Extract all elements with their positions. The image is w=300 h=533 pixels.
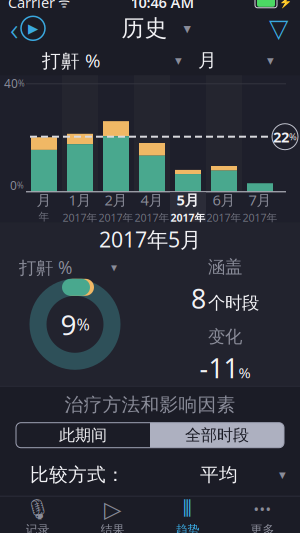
staticText: %	[76, 314, 89, 335]
staticText: 2017年	[134, 210, 169, 225]
staticText: %	[289, 130, 297, 143]
staticText: ▾	[279, 467, 286, 482]
staticText: 7月	[248, 190, 271, 209]
staticText: ▽	[269, 14, 288, 43]
staticText: 6月	[212, 190, 235, 209]
staticText: 8	[191, 281, 206, 316]
button[interactable]: ▷	[75, 496, 150, 533]
staticText: 月	[198, 49, 217, 72]
button[interactable]: 历史	[113, 11, 198, 45]
staticText: 0	[10, 177, 17, 193]
staticText: %	[18, 78, 25, 89]
button[interactable]: 全部时段	[150, 423, 284, 448]
staticText: ▾	[175, 53, 182, 68]
button[interactable]: 此期间	[16, 423, 150, 448]
staticText: 变化	[208, 326, 242, 347]
staticText: 历史	[121, 14, 167, 42]
staticText: 9	[60, 306, 76, 343]
staticText: 🎙	[25, 498, 50, 521]
staticText: ⦀	[182, 498, 192, 520]
staticText: 记录	[25, 522, 49, 533]
staticText: 涵盖	[208, 256, 242, 278]
button[interactable]: •••	[225, 496, 300, 533]
button[interactable]: Back to playback	[0, 11, 55, 45]
staticText: 2月	[104, 190, 127, 209]
staticText: %	[17, 180, 24, 191]
button[interactable]: 🎙	[0, 496, 75, 533]
staticText: 趋势	[175, 522, 199, 533]
staticText: %	[238, 363, 250, 382]
staticText: 2017年	[62, 210, 97, 225]
staticText: ⚡	[279, 0, 292, 8]
staticText: 打鼾 %	[42, 48, 101, 73]
staticText: 4月	[140, 190, 163, 209]
staticText: 个时段	[208, 292, 259, 313]
staticText: 月	[36, 191, 51, 209]
button[interactable]: 月	[198, 46, 274, 74]
staticText: 2017年	[242, 210, 277, 225]
staticText: 2017年	[206, 210, 241, 225]
staticText: 年	[38, 210, 49, 223]
staticText: ▾	[183, 20, 190, 37]
staticText: ᯤ	[55, 0, 70, 11]
button[interactable]: ⦀	[150, 496, 225, 533]
staticText: 更多	[250, 522, 274, 533]
staticText: 此期间	[59, 425, 107, 445]
staticText: 40	[4, 75, 18, 91]
staticText: 2017年5月	[99, 225, 201, 253]
button[interactable]: 打鼾 %	[19, 256, 131, 278]
button[interactable]: Filter	[257, 11, 300, 45]
staticText: 治疗方法和影响因素	[64, 393, 235, 416]
staticText: •••	[253, 500, 271, 519]
staticText: 全部时段	[185, 425, 249, 445]
button[interactable]: 打鼾 %	[42, 46, 182, 74]
staticText: 打鼾 %	[19, 256, 72, 279]
staticText: ▾	[111, 260, 117, 274]
staticText: 5月	[176, 190, 199, 209]
staticText: 2017年	[98, 210, 133, 225]
staticText: -11	[199, 350, 238, 386]
staticText: 22	[273, 127, 289, 146]
staticText: 1月	[68, 190, 91, 209]
staticText: ‹	[10, 7, 18, 49]
staticText: Carrier	[8, 0, 55, 12]
staticText: 2017年	[170, 210, 205, 225]
staticText: 比较方式：	[30, 463, 125, 486]
staticText: 平均	[200, 463, 238, 486]
staticText: ▶	[28, 21, 38, 36]
staticText: ▷	[104, 496, 121, 522]
staticText: 结果	[100, 522, 124, 533]
staticText: ▾	[267, 53, 274, 68]
button[interactable]: 平均	[200, 462, 286, 488]
staticText: 10:46 AM	[130, 0, 194, 12]
